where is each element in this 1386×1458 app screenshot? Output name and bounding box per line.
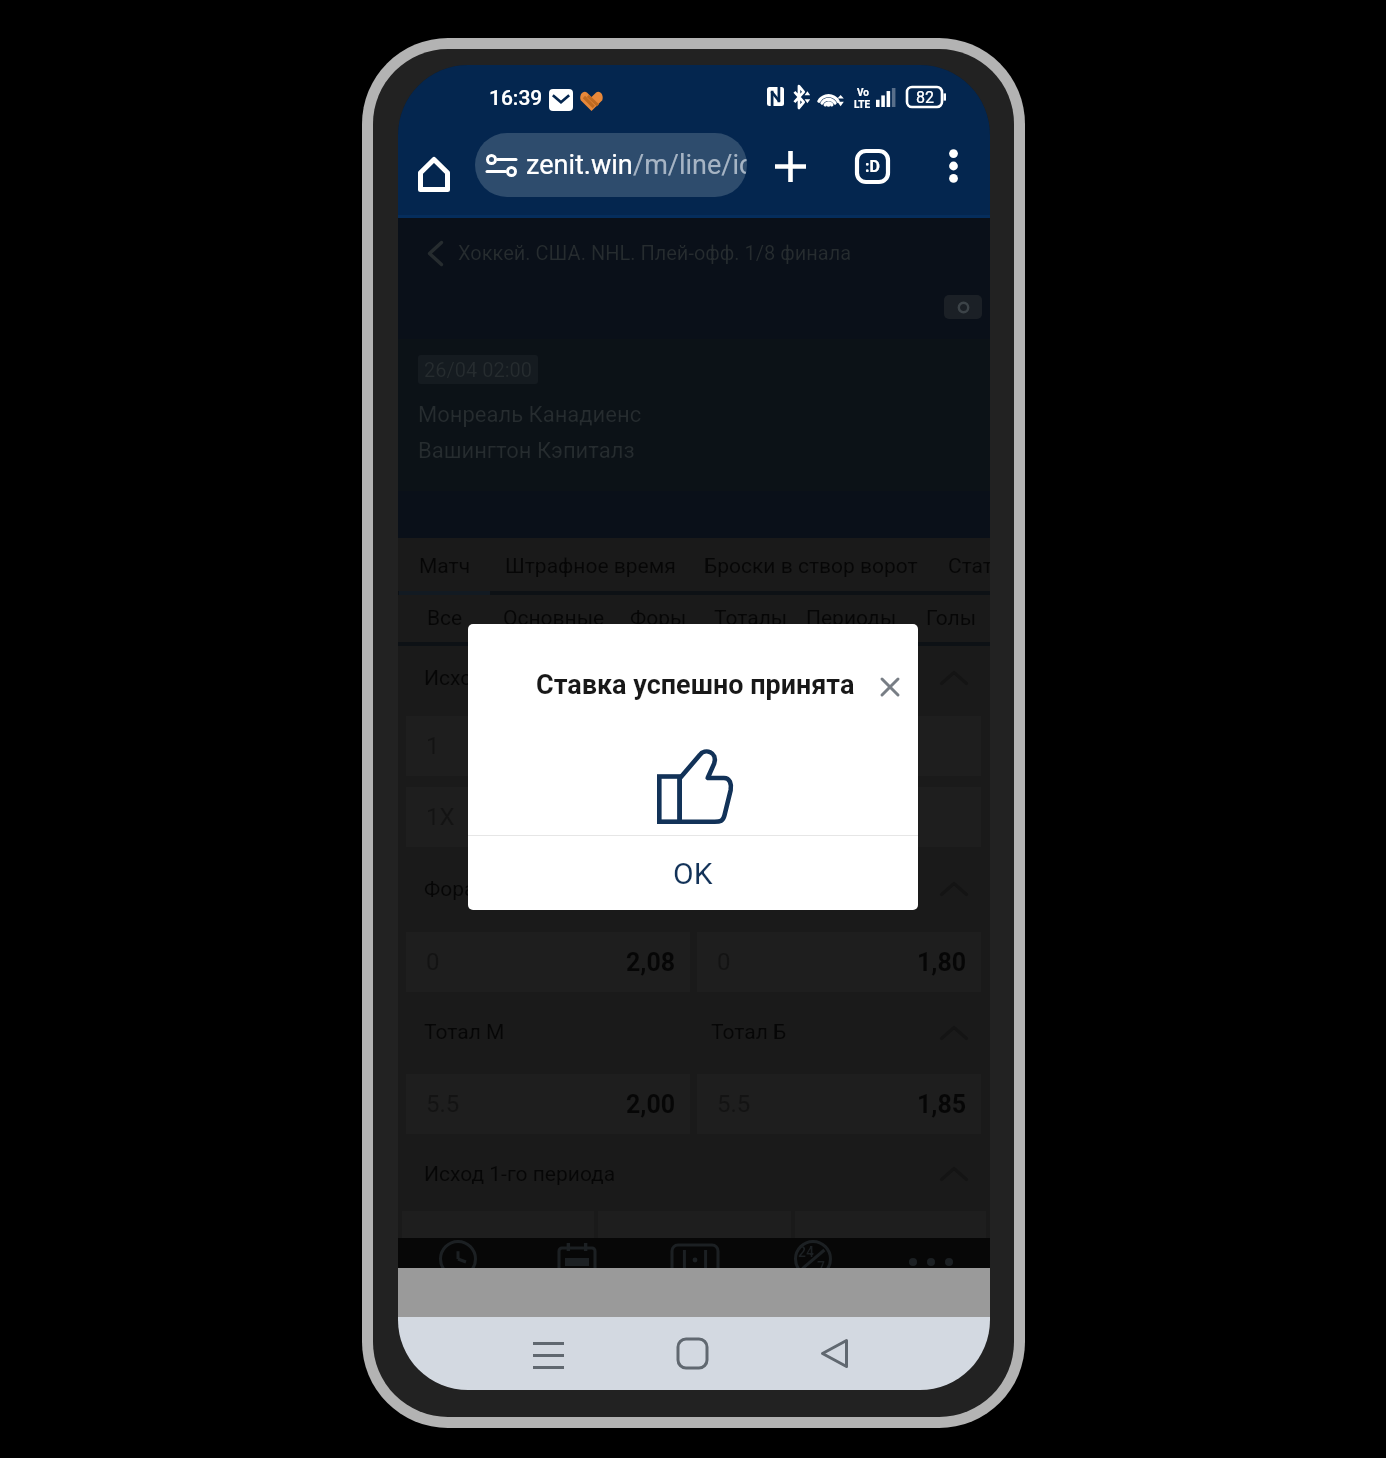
staticText: zenit.win bbox=[526, 149, 633, 181]
staticText: Периоды bbox=[806, 606, 897, 631]
button[interactable]: X bbox=[697, 716, 981, 776]
staticText: Тотал Б bbox=[711, 1020, 787, 1045]
button[interactable]: Close bbox=[869, 666, 911, 708]
staticText: 24 bbox=[798, 1244, 815, 1260]
staticText: 2,00 bbox=[626, 1090, 676, 1119]
staticText: 7 bbox=[817, 1259, 826, 1268]
staticText: Хоккей. США. NHL. Плей-офф. 1/8 финала bbox=[458, 241, 852, 264]
button[interactable]: Video bbox=[944, 295, 982, 319]
staticText: 5.5 bbox=[717, 1090, 751, 1118]
staticText: Броски в створ ворот bbox=[704, 554, 918, 579]
staticText: 0 bbox=[426, 948, 440, 976]
button[interactable]: 0 bbox=[406, 932, 690, 992]
button[interactable]: Home bbox=[655, 1317, 729, 1390]
button[interactable]: Live bbox=[398, 1238, 517, 1268]
button[interactable]: Исход bbox=[398, 646, 990, 710]
staticText: Фора bbox=[424, 877, 476, 902]
staticText: LTE bbox=[854, 99, 871, 111]
staticText: Матч bbox=[419, 554, 471, 579]
staticText: Исход 1-го периода bbox=[424, 1162, 616, 1187]
staticText: OK bbox=[673, 856, 713, 891]
staticText: :D bbox=[865, 157, 880, 176]
button[interactable]: Recents bbox=[511, 1317, 585, 1390]
staticText: 82 bbox=[916, 88, 934, 107]
button[interactable]: Штрафное время bbox=[505, 554, 676, 579]
button[interactable]: Все bbox=[427, 606, 463, 631]
button[interactable]: Матч bbox=[419, 554, 471, 579]
staticText: Ставка успешно принята bbox=[536, 669, 855, 701]
staticText: Штрафное время bbox=[505, 554, 676, 579]
button[interactable]: Home bbox=[402, 142, 466, 206]
staticText: Монреаль Канадиенс bbox=[418, 402, 642, 428]
button[interactable]: Форы bbox=[630, 606, 687, 631]
staticText: Vo bbox=[857, 87, 869, 99]
staticText: Исход bbox=[424, 666, 485, 691]
staticText: Все bbox=[427, 606, 463, 631]
button[interactable]: 12 bbox=[697, 787, 981, 847]
button[interactable]: Голы bbox=[926, 606, 977, 631]
staticText: Вашингтон Кэпиталз bbox=[418, 438, 635, 464]
button[interactable]: Back bbox=[412, 228, 458, 278]
button[interactable]: More options bbox=[925, 138, 981, 194]
staticText: Тотал М bbox=[424, 1020, 505, 1045]
button[interactable]: OK bbox=[468, 836, 918, 910]
button[interactable]: 1 bbox=[406, 716, 690, 776]
staticText: 1X bbox=[426, 803, 455, 831]
button[interactable]: Стат bbox=[948, 554, 990, 579]
staticText: 1,80 bbox=[917, 948, 967, 977]
button[interactable]: 1X bbox=[406, 787, 690, 847]
button[interactable]: Основные bbox=[503, 606, 605, 631]
staticText: Форы bbox=[630, 606, 687, 631]
button[interactable]: 0 bbox=[697, 932, 981, 992]
staticText: Голы bbox=[926, 606, 977, 631]
button[interactable]: New tab bbox=[762, 138, 818, 194]
staticText: /m/line/ic bbox=[633, 149, 747, 181]
button[interactable]: Calendar bbox=[517, 1238, 636, 1268]
staticText: 5.5 bbox=[426, 1090, 460, 1118]
staticText: Основные bbox=[503, 606, 605, 631]
button[interactable]: Тоталы bbox=[714, 606, 788, 631]
staticText: 1,50 bbox=[626, 803, 676, 832]
button[interactable]: zenit.win bbox=[475, 133, 747, 197]
button[interactable]: Back bbox=[797, 1317, 871, 1390]
button[interactable]: Tabs bbox=[844, 138, 900, 194]
button[interactable]: 5.5 bbox=[406, 1074, 690, 1134]
staticText: 2,08 bbox=[626, 948, 676, 977]
staticText: Стат bbox=[948, 554, 990, 579]
button[interactable]: 24/7 bbox=[754, 1238, 872, 1268]
button[interactable]: Scores bbox=[636, 1238, 754, 1268]
button[interactable]: Броски в створ ворот bbox=[704, 554, 918, 579]
button[interactable]: More bbox=[872, 1238, 990, 1268]
staticText: 0 bbox=[717, 948, 731, 976]
button[interactable]: 5.5 bbox=[697, 1074, 981, 1134]
staticText: 26/04 02:00 bbox=[424, 358, 532, 381]
staticText: 1,85 bbox=[917, 1090, 967, 1119]
staticText: Тоталы bbox=[714, 606, 788, 631]
staticText: 12 bbox=[717, 803, 744, 831]
button[interactable]: Периоды bbox=[806, 606, 897, 631]
button[interactable]: Фора bbox=[398, 852, 990, 926]
staticText: 16:39 bbox=[489, 86, 543, 111]
